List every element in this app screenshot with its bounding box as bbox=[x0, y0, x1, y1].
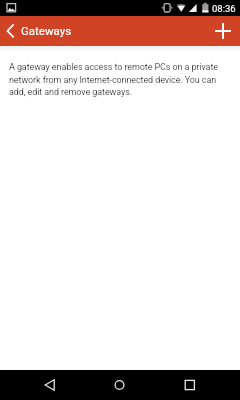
button[interactable]: Navigate up bbox=[0, 16, 20, 46]
staticText: A gateway enables access to remote PCs o… bbox=[9, 62, 224, 97]
button[interactable]: Recent apps bbox=[160, 370, 240, 400]
button[interactable]: Add gateway bbox=[208, 16, 238, 46]
staticText: Gateways bbox=[21, 24, 72, 37]
button[interactable]: Home bbox=[80, 370, 160, 400]
staticText: 08:36 bbox=[212, 3, 236, 14]
button[interactable]: Back bbox=[0, 370, 80, 400]
